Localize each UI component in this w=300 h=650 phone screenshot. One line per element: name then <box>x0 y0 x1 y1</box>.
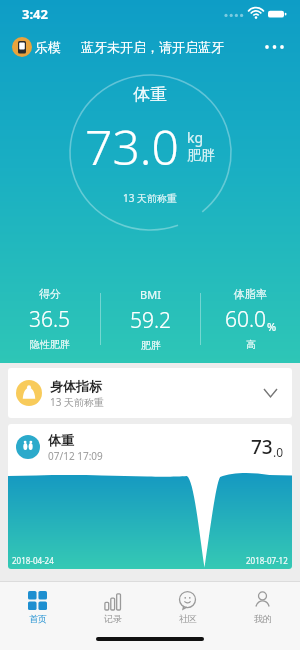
staticText: 记录 <box>104 613 122 624</box>
button[interactable]: 蓝牙未开启，请开启蓝牙 <box>81 39 260 55</box>
staticText: 13 天前称重 <box>123 191 178 205</box>
staticText: 我的 <box>254 613 272 624</box>
staticText: 2018-07-12 <box>246 555 288 566</box>
other: Expand <box>256 379 284 407</box>
staticText: 肥胖 <box>141 339 161 352</box>
button[interactable]: 社区 <box>150 582 225 632</box>
button[interactable]: 首页 <box>0 582 75 632</box>
button[interactable]: BMI <box>101 283 200 355</box>
staticText: 肥胖 <box>187 147 215 165</box>
staticText: 体重 <box>133 84 167 105</box>
staticText: .0 <box>273 444 284 460</box>
staticText: 36.5 <box>29 305 71 334</box>
staticText: 高 <box>246 338 256 351</box>
staticText: 社区 <box>179 613 197 624</box>
button[interactable]: More options <box>260 32 290 62</box>
staticText: 乐模 <box>35 39 61 55</box>
staticText: kg <box>187 128 204 147</box>
staticText: 2018-04-24 <box>12 555 54 566</box>
staticText: % <box>267 319 277 334</box>
staticText: 隐性肥胖 <box>30 338 70 351</box>
button[interactable]: 我的 <box>225 582 300 632</box>
button[interactable]: 乐模 <box>10 35 63 59</box>
button[interactable]: 体脂率 <box>201 283 300 355</box>
button[interactable]: 体重 <box>8 424 292 569</box>
staticText: 73.0 <box>85 114 179 179</box>
staticText: 73 <box>251 434 273 460</box>
staticText: 体重 <box>48 432 74 448</box>
staticText: 得分 <box>39 287 61 301</box>
staticText: 13 天前称重 <box>50 395 105 409</box>
staticText: BMI <box>140 287 161 302</box>
staticText: 3:42 <box>22 5 48 23</box>
staticText: 07/12 17:09 <box>48 449 103 463</box>
staticText: 体脂率 <box>234 287 267 301</box>
staticText: 首页 <box>29 613 47 624</box>
staticText: 身体指标 <box>50 378 102 394</box>
staticText: 59.2 <box>130 306 172 335</box>
button[interactable]: 得分 <box>0 283 100 355</box>
staticText: 60.0 <box>225 305 267 334</box>
button[interactable]: 记录 <box>75 582 150 632</box>
button[interactable]: 身体指标 <box>8 368 292 418</box>
